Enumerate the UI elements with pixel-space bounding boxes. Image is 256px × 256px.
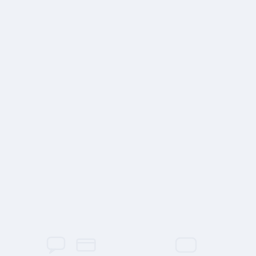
button[interactable]: Chats: [44, 236, 68, 254]
button[interactable]: More: [174, 236, 198, 254]
button[interactable]: Wallet: [74, 236, 98, 254]
